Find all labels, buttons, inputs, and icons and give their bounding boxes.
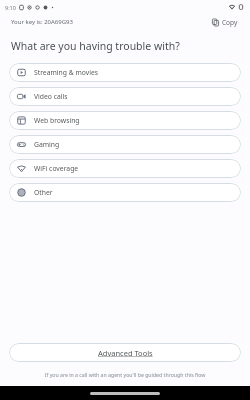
staticText: Advanced Tools	[98, 348, 153, 358]
staticText: 9:10	[5, 4, 16, 11]
button[interactable]: Copy	[210, 16, 240, 29]
button[interactable]: Advanced Tools	[9, 343, 241, 362]
button[interactable]: Video calls	[9, 87, 241, 106]
staticText: Streaming & movies	[34, 68, 99, 77]
staticText: Other	[34, 188, 53, 197]
staticText: Gaming	[34, 140, 60, 149]
staticText: Web browsing	[34, 116, 80, 125]
button[interactable]: Streaming & movies	[9, 63, 241, 82]
button[interactable]: WiFi coverage	[9, 159, 241, 178]
staticText: Video calls	[34, 92, 68, 101]
staticText: What are you having trouble with?	[11, 39, 180, 53]
button[interactable]: Other	[9, 183, 241, 202]
button[interactable]: Gaming	[9, 135, 241, 154]
button[interactable]: Web browsing	[9, 111, 241, 130]
staticText: Copy	[222, 18, 238, 27]
staticText: WiFi coverage	[34, 164, 79, 173]
staticText: If you are in a call with an agent you'l…	[12, 371, 238, 378]
staticText: Your key is: 20A69G93	[11, 18, 73, 26]
